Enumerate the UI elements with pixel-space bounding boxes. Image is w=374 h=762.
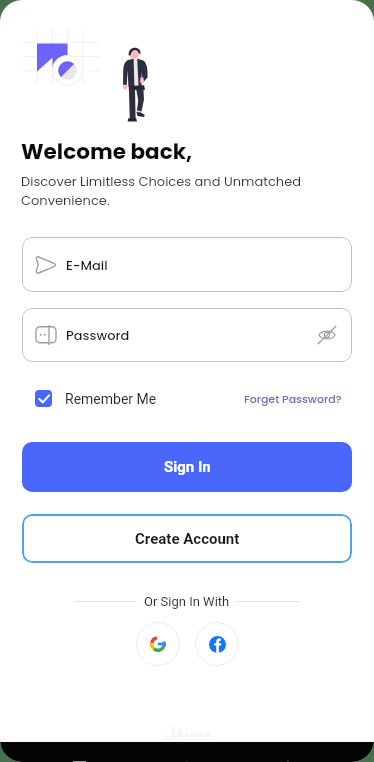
staticText: Or Sign In With — [144, 594, 230, 609]
button[interactable]: Forget Password? — [244, 391, 342, 406]
staticText: Sign In — [164, 458, 211, 476]
staticText: مستقل — [164, 722, 212, 741]
staticText: Create Account — [135, 530, 240, 548]
staticText: Welcome back, — [21, 136, 193, 166]
button[interactable]: Remember Me — [35, 390, 157, 407]
button[interactable]: Sign In — [22, 442, 352, 492]
staticText: Forget Password? — [244, 391, 342, 406]
button[interactable]: Password — [22, 308, 352, 362]
staticText: E-Mail — [66, 256, 108, 274]
button[interactable]: Show password — [315, 323, 339, 347]
button[interactable]: Sign in with Facebook — [195, 622, 239, 666]
button[interactable]: Sign in with Google — [136, 622, 180, 666]
staticText: Password — [66, 326, 130, 344]
button[interactable]: Create Account — [22, 514, 352, 563]
staticText: Remember Me — [65, 391, 157, 407]
staticText: mostaql.com — [161, 741, 214, 752]
staticText: Discover Limitless Choices and Unmatched… — [21, 172, 302, 209]
button[interactable]: E-Mail — [22, 237, 352, 292]
